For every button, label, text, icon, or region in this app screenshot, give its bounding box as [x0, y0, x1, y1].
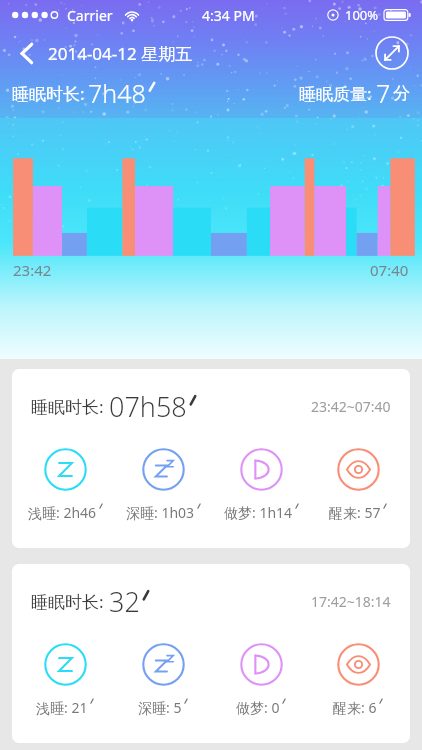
- staticText: 做梦: 0: [236, 698, 280, 717]
- staticText: 浅睡: 21: [36, 698, 88, 717]
- staticText: 23:42~07:40: [311, 397, 391, 416]
- staticText: 07:40: [370, 260, 409, 280]
- staticText: 分: [393, 83, 410, 104]
- button[interactable]: Edit: [375, 36, 409, 70]
- staticText: 深睡: 1h03: [126, 503, 195, 522]
- staticText: 睡眠时长:: [31, 590, 104, 613]
- button[interactable]: Back: [6, 33, 48, 73]
- staticText: 100%: [345, 6, 379, 24]
- button[interactable]: 做梦: 1h14: [212, 448, 310, 522]
- button[interactable]: 睡眠时长:: [12, 564, 410, 743]
- staticText: 32: [109, 583, 140, 620]
- staticText: 7h48: [88, 76, 146, 110]
- staticText: 深睡: 5: [138, 698, 182, 717]
- button[interactable]: 醒来: 6: [310, 643, 406, 717]
- staticText: 睡眠质量:: [299, 82, 372, 105]
- button[interactable]: 浅睡: 2h46: [16, 448, 114, 522]
- staticText: 7: [376, 76, 391, 110]
- staticText: 睡眠时长:: [12, 82, 85, 105]
- staticText: 17:42~18:14: [311, 592, 391, 611]
- staticText: Carrier: [67, 6, 113, 25]
- staticText: 睡眠时长:: [31, 395, 104, 418]
- button[interactable]: 深睡: 1h03: [114, 448, 212, 522]
- staticText: 醒来: 57: [329, 503, 381, 522]
- staticText: 23:42: [13, 260, 52, 280]
- button[interactable]: 做梦: 0: [212, 643, 310, 717]
- button[interactable]: 浅睡: 21: [16, 643, 114, 717]
- staticText: 07h58: [109, 388, 187, 425]
- button[interactable]: 醒来: 57: [310, 448, 406, 522]
- button[interactable]: 睡眠时长:: [12, 369, 410, 548]
- staticText: 4:34 PM: [202, 6, 255, 25]
- button[interactable]: 深睡: 5: [114, 643, 212, 717]
- staticText: 醒来: 6: [333, 698, 377, 717]
- staticText: 2014-04-12 星期五: [48, 42, 193, 65]
- staticText: 浅睡: 2h46: [28, 503, 97, 522]
- staticText: 做梦: 1h14: [224, 503, 293, 522]
